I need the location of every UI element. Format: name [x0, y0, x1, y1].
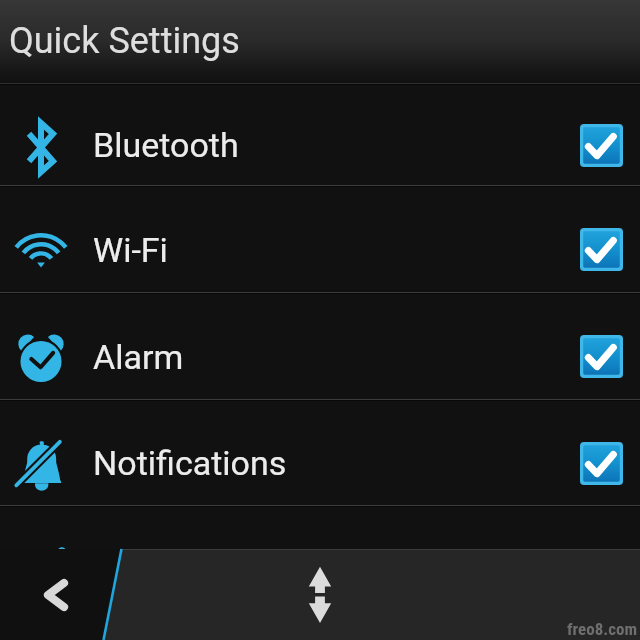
button[interactable]: Toggle	[580, 124, 623, 167]
button[interactable]: Notifications	[0, 401, 640, 507]
button[interactable]: Toggle	[580, 228, 623, 271]
staticText: Notifications	[93, 443, 287, 483]
staticText: Bluetooth	[93, 125, 239, 165]
staticText: Quick Settings	[9, 20, 240, 62]
staticText: Alarm	[93, 337, 184, 377]
staticText: Wi-Fi	[93, 230, 168, 270]
button[interactable]: Resize panel	[290, 549, 350, 640]
button[interactable]: Toggle	[580, 442, 623, 485]
button[interactable]: Bluetooth	[0, 85, 640, 187]
button[interactable]: Toggle	[580, 335, 623, 378]
button[interactable]: Back	[0, 549, 110, 640]
button[interactable]: Alarm	[0, 294, 640, 401]
button[interactable]: Wi-Fi	[0, 187, 640, 294]
button[interactable]	[0, 507, 640, 567]
staticText: freo8.com	[567, 619, 638, 639]
